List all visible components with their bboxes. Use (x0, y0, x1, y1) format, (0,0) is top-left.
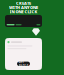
staticText: CREATE (16, 1, 31, 6)
staticText: IN ONE CLICK (9, 9, 37, 14)
staticText: Get started (18, 60, 28, 67)
button[interactable]: Get started (17, 62, 30, 66)
staticText: WITH ANYONE (9, 5, 38, 10)
